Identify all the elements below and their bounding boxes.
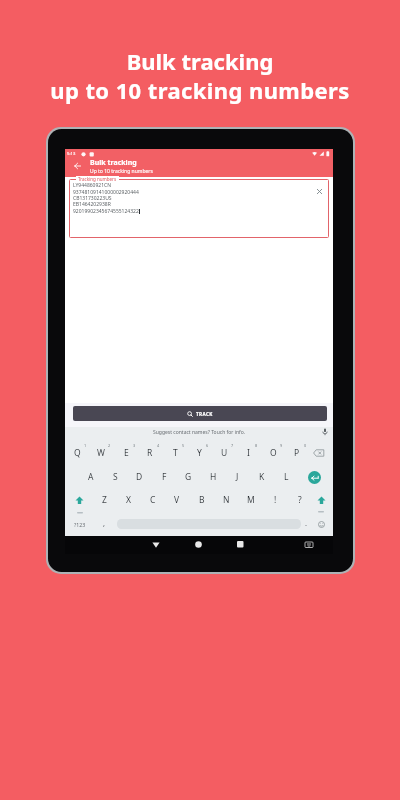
button[interactable]: S [105,470,125,484]
staticText: A [88,471,94,483]
staticText: Up to 10 tracking numbers [90,168,153,175]
staticText: Q [74,447,81,459]
staticText: ? [298,494,302,506]
button[interactable] [316,188,323,195]
button[interactable]: L [276,470,296,484]
staticText: , [103,518,106,528]
button[interactable]: E [116,446,136,460]
button[interactable]: Q [67,446,87,460]
button[interactable]: H [203,470,223,484]
staticText: S [113,471,118,483]
staticText: O [270,447,277,459]
button[interactable]: TRACK [73,406,327,421]
button[interactable]: , [99,516,109,530]
staticText: E [124,447,129,459]
staticText: C [150,494,156,506]
button[interactable]: P [287,446,307,460]
staticText: I [247,447,250,459]
staticText: U [221,447,228,459]
button[interactable] [152,542,160,548]
button[interactable] [237,541,244,548]
button[interactable]: U [214,446,234,460]
staticText: H [210,471,217,483]
staticText: 7 [231,443,234,448]
staticText: 2 [108,443,111,448]
staticText: Y [197,447,202,459]
button[interactable]: J [227,470,247,484]
button[interactable] [74,162,81,170]
staticText: TRACK [196,411,213,417]
button[interactable]: Y [189,446,209,460]
staticText: up to 10 tracking numbers [0,75,400,105]
staticText: N [223,494,230,506]
staticText: ?123 [74,521,86,528]
staticText: J [236,471,239,483]
staticText: F [162,471,167,483]
button[interactable]: C [143,493,163,507]
button[interactable]: . [301,516,311,530]
staticText: K [259,471,265,483]
staticText: Suggest contact names? Touch for info. [153,429,246,436]
staticText: Bulk tracking [90,158,137,168]
staticText: X [126,494,131,506]
staticText: G [185,471,192,483]
staticText: W [97,447,105,459]
button[interactable] [313,449,325,457]
button[interactable]: A [81,470,101,484]
staticText: Z [102,494,107,506]
button[interactable] [322,428,328,436]
staticText: 4 [157,443,160,448]
staticText: 5 [182,443,185,448]
button[interactable]: O [263,446,283,460]
button[interactable]: ?123 [69,517,91,531]
button[interactable] [308,471,321,484]
button[interactable] [75,496,84,505]
staticText: 93748109141000002920444 [73,189,139,195]
button[interactable]: N [216,493,236,507]
button[interactable] [318,521,325,528]
staticText: ! [274,494,277,506]
staticText: 3 [133,443,136,448]
button[interactable]: ! [265,493,285,507]
button[interactable]: Z [94,493,114,507]
staticText: T [173,447,178,459]
button[interactable] [69,179,329,238]
staticText: D [136,471,143,483]
button[interactable]: I [238,446,258,460]
staticText: 8 [255,443,258,448]
staticText: CB131730223US [73,195,112,201]
button[interactable]: R [140,446,160,460]
staticText: 92019902345674555124322 [73,208,139,214]
button[interactable]: T [165,446,185,460]
button[interactable]: B [192,493,212,507]
staticText: 5:13 [67,151,76,157]
button[interactable]: ? [290,493,310,507]
staticText: P [294,447,300,459]
button[interactable]: K [252,470,272,484]
staticText: Bulk tracking [0,46,400,76]
staticText: 0 [304,443,307,448]
button[interactable] [317,496,326,505]
staticText: R [147,447,153,459]
button[interactable]: F [154,470,174,484]
staticText: LY944860921CN [73,182,112,188]
staticText: 1 [84,443,87,448]
staticText: EB1464202938R [73,201,111,207]
button[interactable]: V [167,493,187,507]
staticText: B [199,494,205,506]
button[interactable]: X [118,493,138,507]
button[interactable]: W [91,446,111,460]
button[interactable] [195,541,202,548]
staticText: . [305,518,308,528]
staticText: L [284,471,289,483]
staticText: 6 [206,443,209,448]
button[interactable]: M [241,493,261,507]
staticText: Tracking numbers [78,176,117,182]
staticText: V [174,494,180,506]
button[interactable]: G [178,470,198,484]
staticText: M [247,494,255,506]
staticText: 9 [280,443,283,448]
button[interactable]: D [129,470,149,484]
button[interactable] [305,542,313,548]
